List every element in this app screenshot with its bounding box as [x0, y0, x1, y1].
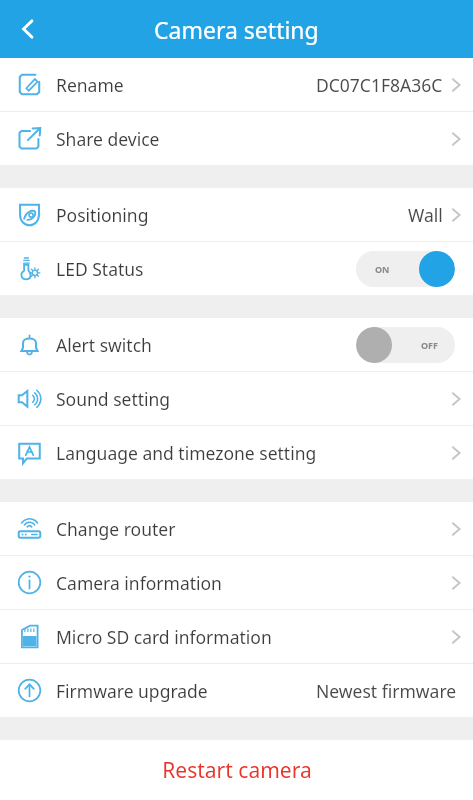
- button[interactable]: Language and timezone setting: [0, 426, 473, 479]
- button[interactable]: Alert switch: [0, 318, 473, 371]
- button[interactable]: Restart camera: [0, 740, 473, 800]
- button[interactable]: Camera information: [0, 556, 473, 609]
- staticText: OFF: [421, 339, 439, 351]
- staticText: Wall: [408, 203, 443, 227]
- button[interactable]: Sound setting: [0, 372, 473, 425]
- staticText: Language and timezone setting: [56, 441, 317, 465]
- staticText: Restart camera: [162, 756, 312, 785]
- staticText: DC07C1F8A36C: [316, 73, 443, 97]
- button[interactable]: Micro SD card information: [0, 610, 473, 663]
- button[interactable]: Change router: [0, 502, 473, 555]
- staticText: Newest firmware: [316, 679, 457, 703]
- button[interactable]: Firmware upgrade: [0, 664, 473, 717]
- button[interactable]: Positioning: [0, 188, 473, 241]
- staticText: Sound setting: [56, 387, 171, 411]
- button[interactable]: LED Status on: [356, 251, 455, 287]
- staticText: Share device: [56, 127, 160, 151]
- staticText: Change router: [56, 517, 176, 541]
- staticText: Alert switch: [56, 333, 152, 357]
- staticText: Firmware upgrade: [56, 679, 208, 703]
- staticText: Rename: [56, 73, 124, 97]
- button[interactable]: Rename: [0, 58, 473, 111]
- staticText: Micro SD card information: [56, 625, 272, 649]
- staticText: Camera setting: [154, 14, 319, 45]
- staticText: LED Status: [56, 257, 144, 281]
- button[interactable]: Back: [0, 1, 56, 57]
- staticText: ON: [375, 263, 390, 275]
- staticText: Positioning: [56, 203, 149, 227]
- button[interactable]: Share device: [0, 112, 473, 165]
- button[interactable]: LED Status: [0, 242, 473, 295]
- staticText: Camera information: [56, 571, 222, 595]
- button[interactable]: Alert switch off: [356, 327, 455, 363]
